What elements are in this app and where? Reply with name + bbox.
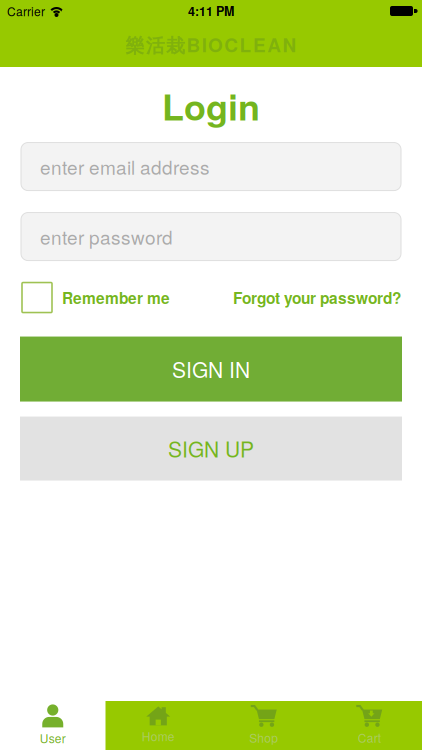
staticText: Shop [249,729,278,746]
staticText: SIGN UP [168,433,254,464]
staticText: enter password [40,223,173,250]
button[interactable]: Forgot your password? [233,286,401,309]
button[interactable]: Remember me [22,283,170,313]
button[interactable]: SIGN UP [20,417,402,481]
staticText: SIGN IN [172,354,250,384]
staticText: Remember me [62,286,170,309]
staticText: Forgot your password? [233,286,401,309]
button[interactable]: Home [105,701,211,750]
button[interactable]: SIGN IN [20,337,402,402]
staticText: 4:11 PM [188,2,234,20]
staticText: enter email address [40,153,210,180]
button[interactable]: Cart [316,701,422,750]
button[interactable]: enter password [21,213,401,261]
button[interactable]: enter email address [21,143,401,191]
staticText: User [40,729,66,747]
staticText: Carrier [7,2,45,20]
staticText: Login [162,80,260,132]
staticText: Home [142,727,175,745]
staticText: 樂活栽BIOCLEAN [125,31,296,58]
button[interactable]: User [0,701,105,750]
staticText: Cart [358,729,381,746]
button[interactable]: Shop [211,701,316,750]
